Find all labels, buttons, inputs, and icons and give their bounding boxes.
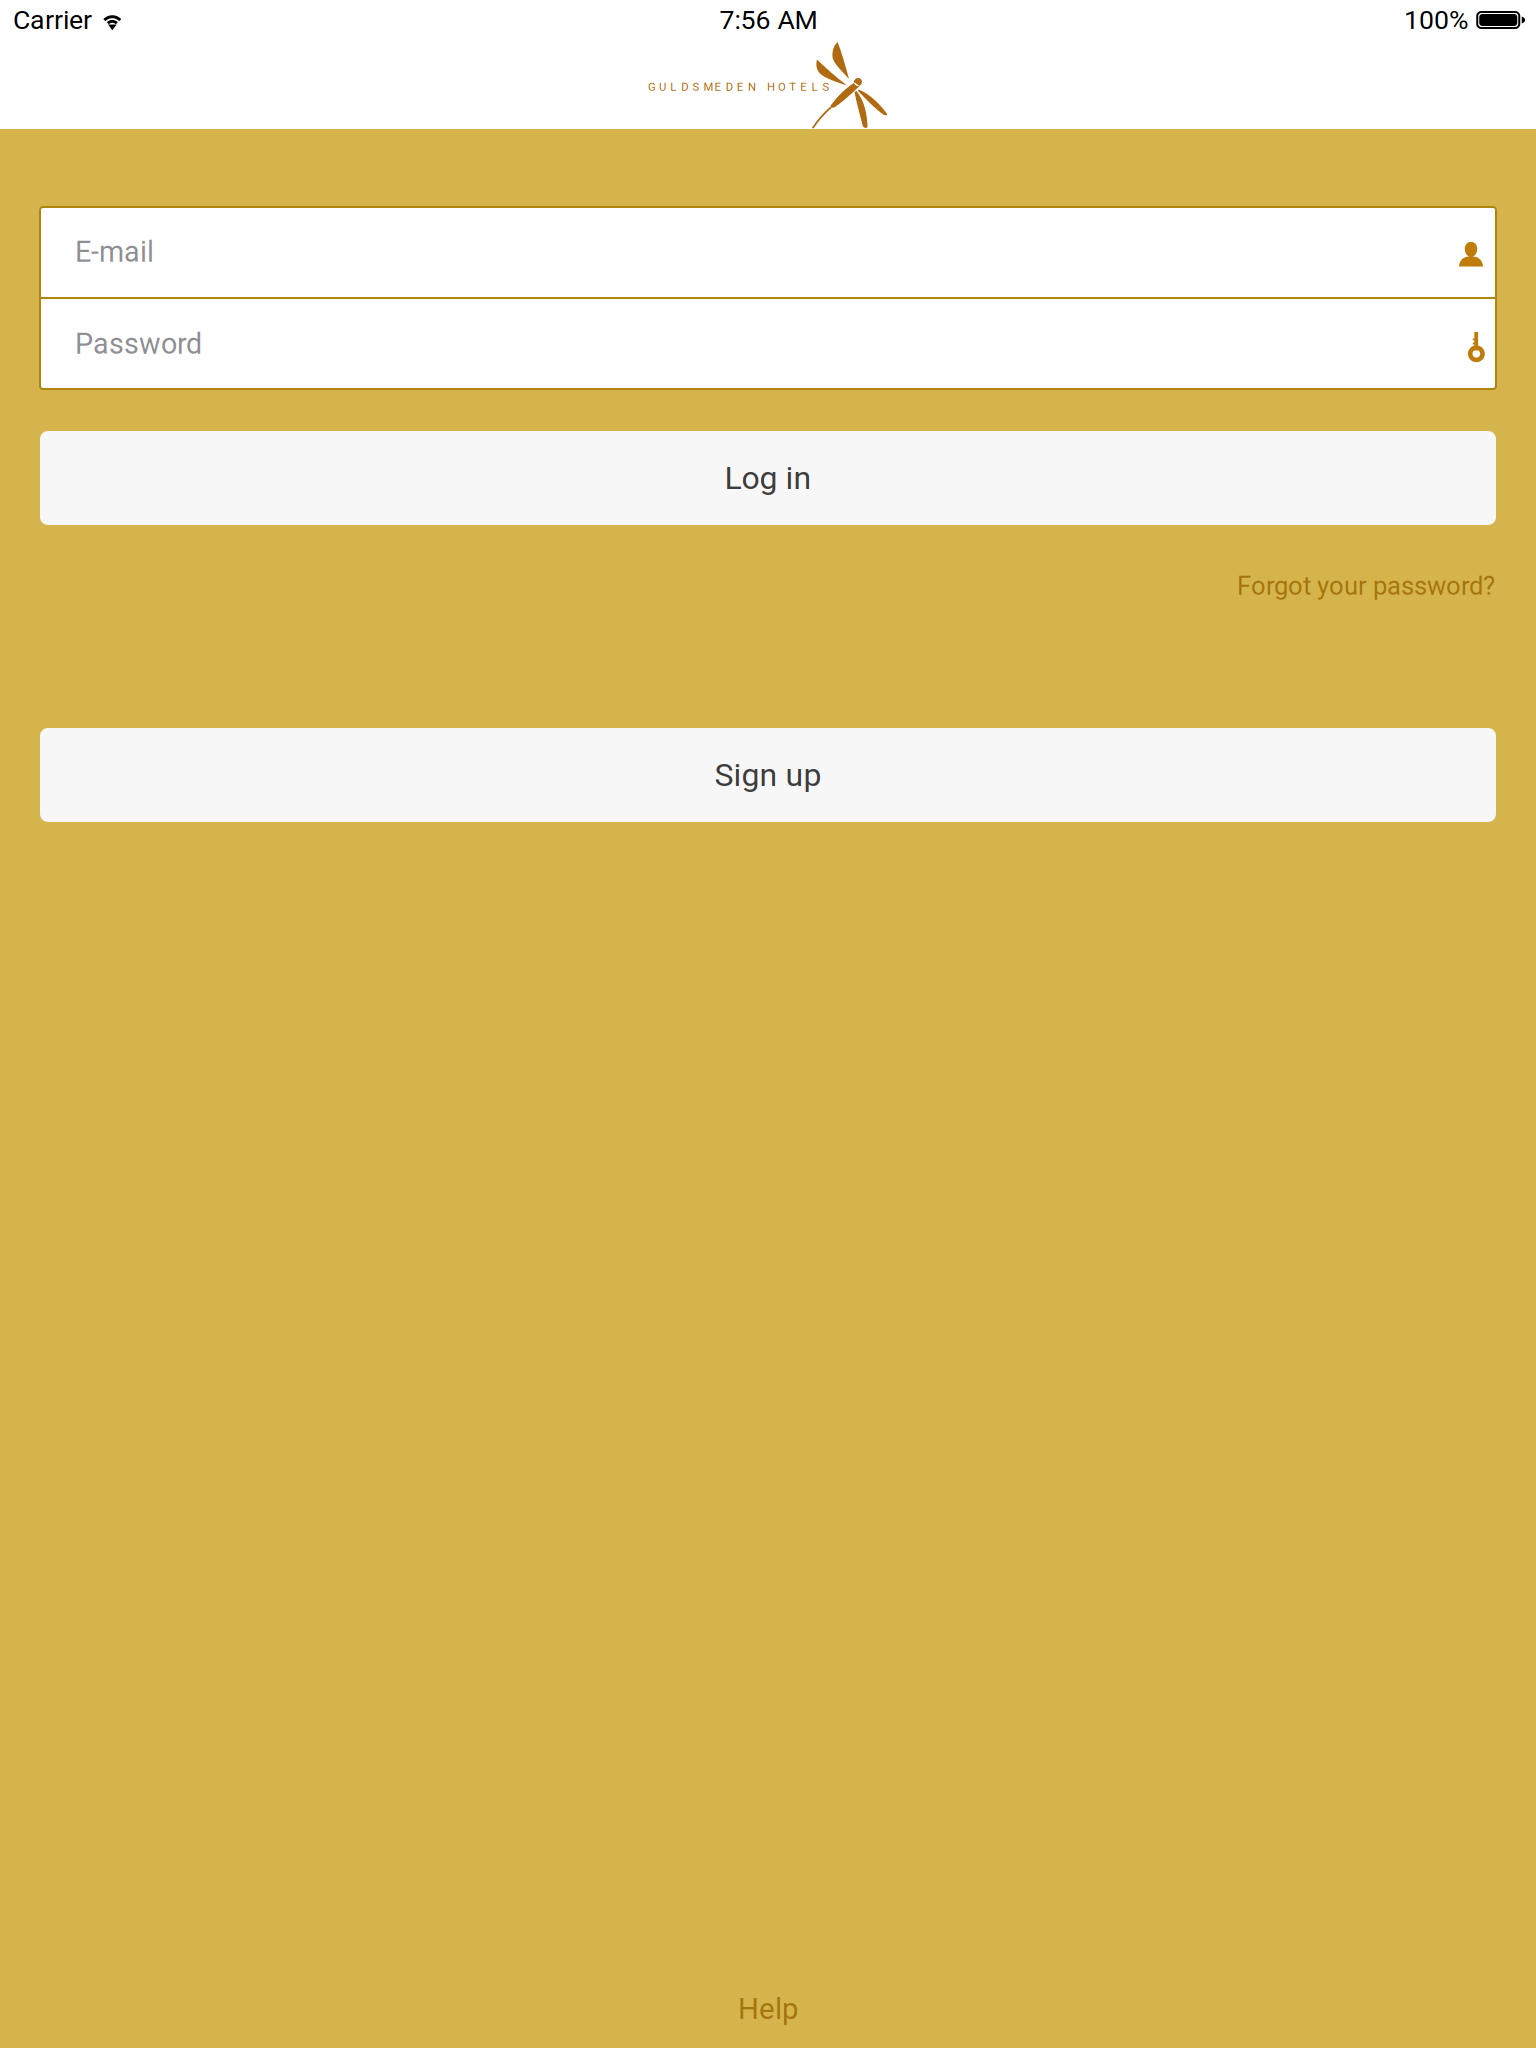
- staticText: E-mail: [75, 235, 154, 269]
- staticText: G: [648, 80, 656, 94]
- button[interactable]: Password: [40, 299, 1496, 389]
- staticText: Sign up: [714, 756, 821, 794]
- staticText: Password: [75, 327, 202, 361]
- button[interactable]: Log in: [40, 431, 1496, 525]
- button[interactable]: Sign up: [40, 728, 1496, 822]
- staticText: M: [703, 80, 713, 94]
- staticText: N: [748, 80, 756, 94]
- staticText: Log in: [724, 459, 811, 497]
- button[interactable]: E-mail: [40, 207, 1496, 297]
- staticText: H: [767, 80, 775, 94]
- button[interactable]: Help: [0, 1983, 1536, 2035]
- staticText: S: [822, 80, 829, 94]
- staticText: Forgot your password?: [1237, 571, 1495, 601]
- staticText: D: [681, 80, 688, 94]
- staticText: 7:56 AM: [719, 4, 817, 36]
- staticText: Carrier: [13, 4, 92, 36]
- staticText: Help: [738, 1992, 798, 2026]
- staticText: S: [692, 80, 699, 94]
- staticText: U: [659, 80, 666, 94]
- staticText: 100%: [1404, 4, 1469, 36]
- staticText: O: [778, 80, 786, 94]
- staticText: L: [670, 80, 676, 94]
- staticText: L: [811, 80, 817, 94]
- staticText: E: [800, 80, 806, 94]
- staticText: D: [726, 80, 733, 94]
- staticText: E: [715, 80, 721, 94]
- staticText: T: [789, 80, 796, 94]
- staticText: E: [737, 80, 743, 94]
- button[interactable]: Forgot your password?: [1237, 571, 1495, 601]
